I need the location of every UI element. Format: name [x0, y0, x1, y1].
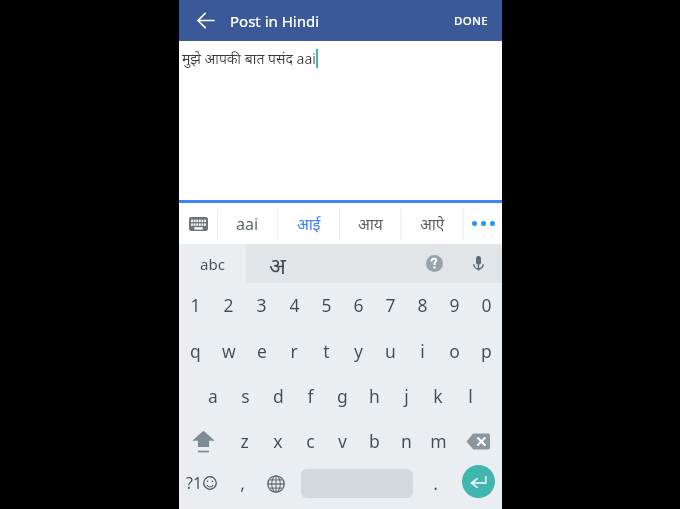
button[interactable]: आऐ [401, 203, 463, 244]
button[interactable]: x [261, 419, 294, 464]
staticText: v [338, 429, 347, 453]
button[interactable]: Switch keyboard [179, 203, 217, 244]
button[interactable]: 8 [406, 283, 438, 329]
button[interactable]: y [342, 329, 374, 374]
button[interactable]: 6 [342, 283, 374, 329]
staticText: 5 [321, 293, 332, 317]
button[interactable]: f [294, 374, 326, 419]
button[interactable]: Voice input [459, 244, 497, 283]
staticText: w [222, 339, 236, 363]
button[interactable]: h [358, 374, 390, 419]
button[interactable]: More suggestions [464, 203, 502, 244]
staticText: h [369, 384, 380, 408]
button[interactable]: u [374, 329, 406, 374]
button[interactable]: q [179, 329, 212, 374]
button[interactable]: आय [340, 203, 400, 244]
button[interactable]: Enter [452, 464, 504, 509]
button[interactable]: k [422, 374, 454, 419]
staticText: Post in Hindi [230, 11, 320, 31]
staticText: m [430, 429, 447, 453]
staticText: y [354, 339, 363, 363]
button[interactable]: n [390, 419, 422, 464]
staticText: आय [358, 213, 383, 234]
staticText: aai [236, 213, 259, 235]
staticText: DONE [454, 13, 488, 29]
button[interactable]: Change language [257, 464, 295, 509]
button[interactable]: 1 [179, 283, 212, 329]
button[interactable]: c [294, 419, 326, 464]
staticText: u [385, 339, 396, 363]
button[interactable]: 7 [374, 283, 406, 329]
button[interactable]: i [406, 329, 438, 374]
button[interactable]: w [212, 329, 245, 374]
button[interactable]: Help [415, 244, 453, 283]
button[interactable]: d [262, 374, 294, 419]
button[interactable]: Backspace [454, 419, 502, 464]
button[interactable]: 4 [278, 283, 310, 329]
button[interactable]: l [454, 374, 486, 419]
button[interactable]: abc [179, 244, 246, 283]
staticText: j [404, 384, 409, 408]
staticText: ?1 [186, 472, 203, 494]
button[interactable]: Shift [179, 419, 228, 464]
staticText: मुझे आपकी बात पसंद aai [182, 49, 316, 68]
staticText: c [306, 429, 315, 453]
staticText: a [208, 384, 218, 408]
button[interactable]: v [326, 419, 358, 464]
staticText: 0 [481, 293, 492, 317]
button[interactable]: 0 [470, 283, 502, 329]
staticText: आऐ [420, 213, 445, 234]
staticText: 6 [353, 293, 364, 317]
button[interactable]: a [196, 374, 229, 419]
staticText: d [273, 384, 284, 408]
staticText: p [481, 339, 492, 363]
staticText: . [433, 471, 438, 495]
staticText: 8 [417, 293, 428, 317]
staticText: i [420, 339, 425, 363]
staticText: 7 [385, 293, 396, 317]
staticText: l [468, 384, 473, 408]
button[interactable]: r [278, 329, 310, 374]
staticText: g [337, 384, 348, 408]
button[interactable]: 3 [245, 283, 278, 329]
button[interactable]: j [390, 374, 422, 419]
button[interactable]: 5 [310, 283, 342, 329]
button[interactable]: p [470, 329, 502, 374]
button[interactable]: o [438, 329, 470, 374]
staticText: 4 [289, 293, 300, 317]
staticText: 1 [190, 293, 201, 317]
button[interactable]: Back [185, 0, 225, 41]
staticText: अ [269, 250, 286, 280]
staticText: q [190, 339, 201, 363]
button[interactable]: g [326, 374, 358, 419]
button[interactable]: आई [278, 203, 339, 244]
button[interactable]: . [419, 464, 451, 509]
button[interactable]: DONE [440, 0, 502, 41]
staticText: f [307, 384, 314, 408]
staticText: b [369, 429, 380, 453]
button[interactable]: 9 [438, 283, 470, 329]
button[interactable]: m [422, 419, 454, 464]
button[interactable]: z [228, 419, 261, 464]
button[interactable]: aai [218, 203, 277, 244]
staticText: 9 [449, 293, 460, 317]
staticText: 3 [256, 293, 267, 317]
staticText: s [241, 384, 250, 408]
staticText: आई [297, 213, 321, 234]
button[interactable]: , [227, 464, 257, 509]
staticText: t [323, 339, 330, 363]
staticText: e [257, 339, 267, 363]
button[interactable]: s [229, 374, 262, 419]
button[interactable]: b [358, 419, 390, 464]
button[interactable]: t [310, 329, 342, 374]
staticText: x [273, 429, 283, 453]
button[interactable]: ?1 [179, 464, 224, 509]
staticText: , [240, 471, 245, 495]
button[interactable]: Space [295, 464, 419, 509]
staticText: o [449, 339, 460, 363]
button[interactable]: e [245, 329, 278, 374]
button[interactable]: 2 [212, 283, 245, 329]
staticText: n [401, 429, 412, 453]
staticText: r [290, 339, 298, 363]
staticText: z [240, 429, 249, 453]
